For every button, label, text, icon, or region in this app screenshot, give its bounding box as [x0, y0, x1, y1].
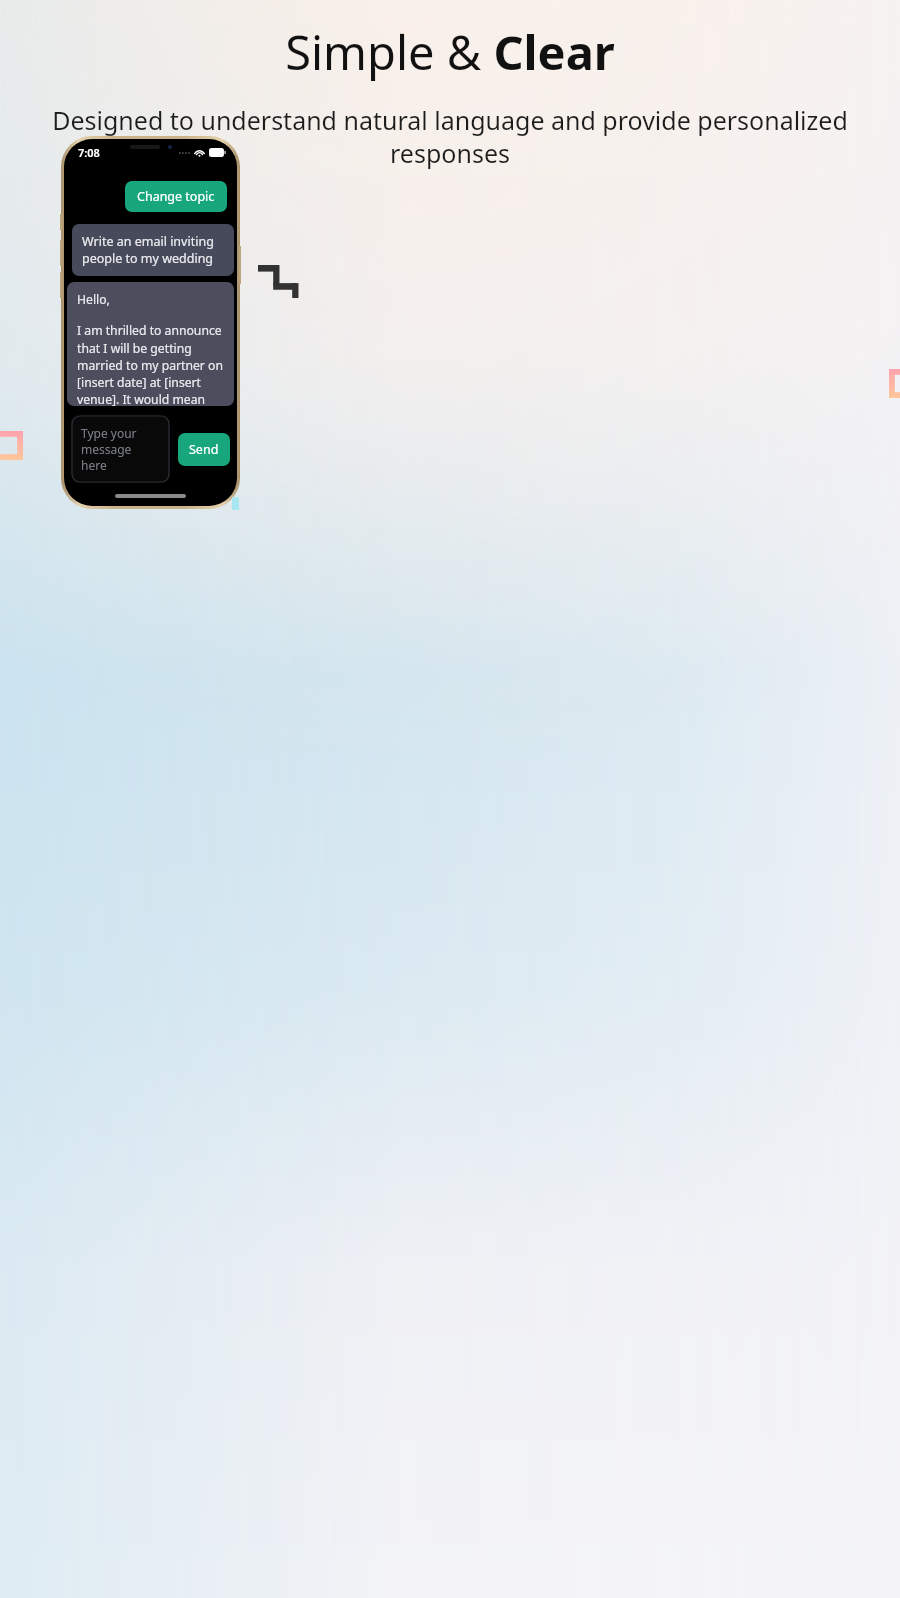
button[interactable]: Write an email inviting people to my wed…	[72, 224, 234, 276]
staticText: Simple & Clear	[285, 20, 615, 84]
button[interactable]: Change topic	[125, 181, 227, 212]
button[interactable]: Type your message here	[71, 415, 170, 483]
staticText: Hello,	[77, 291, 110, 308]
button[interactable]: Send	[178, 433, 230, 466]
staticText: Type your message here	[81, 425, 160, 473]
staticText: Send	[189, 441, 219, 458]
other: Home	[115, 494, 186, 498]
staticText: 7:08	[78, 145, 100, 160]
staticText: Designed to understand natural language …	[26, 103, 874, 170]
staticText: I am thrilled to announce that I will be…	[77, 322, 224, 406]
staticText: Change topic	[137, 188, 215, 205]
staticText: Write an email inviting people to my wed…	[82, 233, 224, 267]
